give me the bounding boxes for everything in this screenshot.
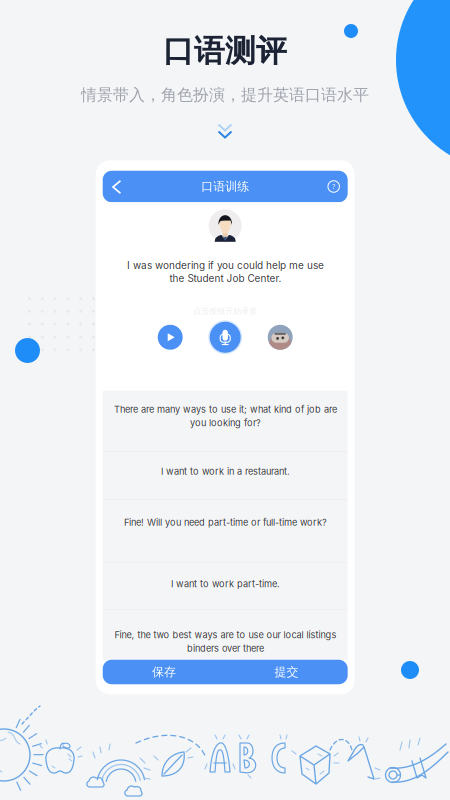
button[interactable]: Play <box>153 320 187 354</box>
button[interactable]: Fine! Will you need part-time or full-ti… <box>103 500 348 563</box>
button[interactable]: Fine, the two best ways are to use our l… <box>103 610 348 660</box>
staticText: Fine! Will you need part-time or full-ti… <box>124 517 327 528</box>
staticText: I was wondering if you could help me use… <box>127 259 324 284</box>
staticText: 提交 <box>274 665 298 679</box>
staticText: 口语测评 <box>163 32 287 70</box>
staticText: I want to work part-time. <box>171 578 280 589</box>
staticText: ? <box>332 182 335 191</box>
staticText: 情景带入，角色扮演，提升英语口语水平 <box>81 85 369 105</box>
button[interactable]: Back <box>103 171 131 202</box>
staticText: Fine, the two best ways are to use our l… <box>114 629 336 654</box>
button[interactable]: Play recording <box>263 320 297 354</box>
staticText: 口语训练 <box>201 179 249 194</box>
button[interactable]: 保存 <box>103 660 225 684</box>
button[interactable]: I want to work part-time. <box>103 563 348 610</box>
staticText: I want to work in a restaurant. <box>161 466 290 477</box>
button[interactable]: There are many ways to use it; what kind… <box>103 391 348 452</box>
staticText: 点击按钮开始录音 <box>193 306 257 316</box>
button[interactable]: Record <box>208 320 242 354</box>
button[interactable]: 提交 <box>225 660 348 684</box>
button[interactable]: Help <box>320 171 348 202</box>
staticText: There are many ways to use it; what kind… <box>114 404 337 429</box>
staticText: 保存 <box>152 665 176 679</box>
button[interactable]: I want to work in a restaurant. <box>103 452 348 500</box>
